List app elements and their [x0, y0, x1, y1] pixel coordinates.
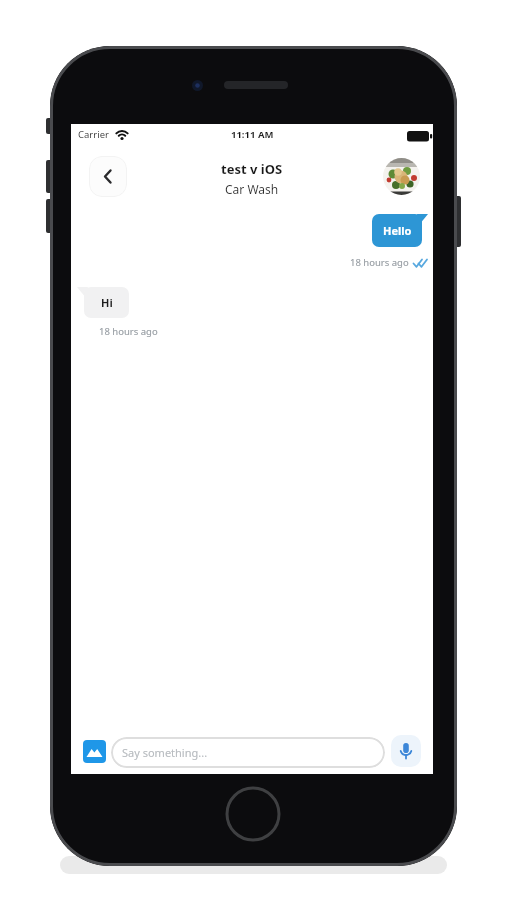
staticText: 18 hours ago: [350, 256, 409, 269]
staticText: 11:11 AM: [231, 128, 274, 141]
staticText: Carrier: [78, 128, 109, 141]
staticText: Say something...: [122, 745, 208, 760]
staticText: Hi: [101, 295, 113, 310]
staticText: 18 hours ago: [99, 325, 158, 338]
staticText: test v iOS: [221, 160, 283, 178]
staticText: Hello: [383, 223, 412, 238]
staticText: Car Wash: [225, 181, 279, 197]
